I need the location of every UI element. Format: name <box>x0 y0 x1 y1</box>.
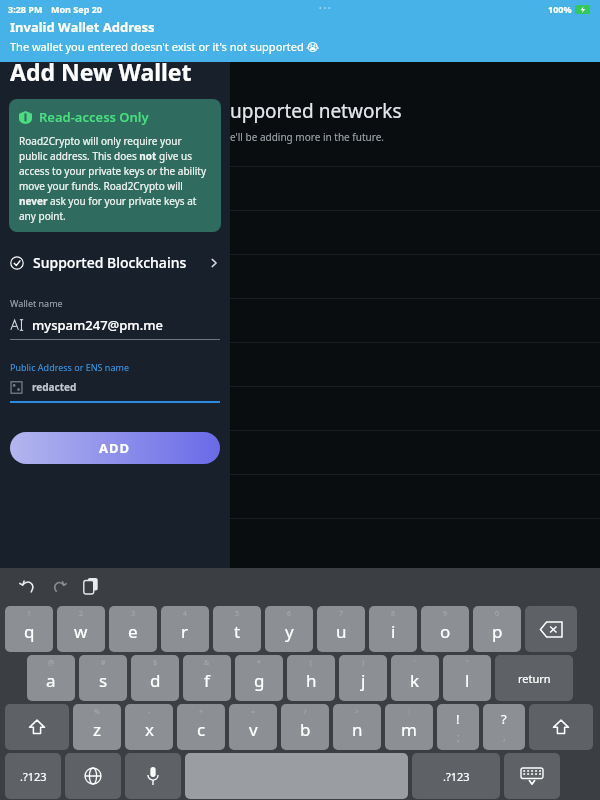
staticText: ; <box>457 729 460 744</box>
button[interactable]: 3 <box>109 606 157 652</box>
staticText: h <box>306 669 317 692</box>
button[interactable]: + <box>177 704 225 750</box>
staticText: z <box>93 718 101 741</box>
staticText: f <box>204 669 210 692</box>
button[interactable] <box>5 704 69 750</box>
staticText: 5 <box>235 609 240 619</box>
button[interactable]: Undo <box>14 573 40 599</box>
staticText: * <box>257 658 261 668</box>
staticText: + <box>199 707 204 717</box>
staticText: i <box>391 620 396 643</box>
staticText: u <box>336 620 347 643</box>
button[interactable] <box>529 704 593 750</box>
button[interactable]: > <box>333 704 381 750</box>
button[interactable] <box>525 606 577 652</box>
button[interactable]: return <box>495 655 573 701</box>
button[interactable]: ADD <box>10 432 220 464</box>
staticText: 1 <box>27 609 32 619</box>
staticText: & <box>204 658 210 668</box>
button[interactable]: # <box>79 655 127 701</box>
staticText: : <box>408 707 410 717</box>
staticText: / <box>304 707 307 717</box>
staticText: ) <box>362 658 365 668</box>
button[interactable]: 1 <box>5 606 53 652</box>
staticText: l <box>465 669 470 692</box>
staticText: .?123 <box>20 769 47 784</box>
button[interactable]: $ <box>131 655 179 701</box>
staticText: .?123 <box>443 769 470 784</box>
button[interactable]: ' <box>391 655 439 701</box>
staticText: @ <box>48 658 55 668</box>
button[interactable] <box>185 753 408 799</box>
staticText: m <box>401 718 417 741</box>
button[interactable]: : <box>385 704 433 750</box>
staticText: ? <box>501 710 507 728</box>
staticText: r <box>181 620 189 643</box>
button[interactable]: Supported Blockchains <box>0 246 230 279</box>
staticText: > <box>355 707 360 717</box>
staticText: c <box>197 718 206 741</box>
button[interactable]: ! <box>437 704 479 750</box>
staticText: Add New Wallet <box>10 56 192 87</box>
staticText: 9 <box>443 609 448 619</box>
staticText: upported networks <box>230 98 402 124</box>
staticText: x <box>145 718 154 741</box>
button[interactable]: @ <box>27 655 75 701</box>
button[interactable]: ( <box>287 655 335 701</box>
button[interactable]: ) <box>339 655 387 701</box>
button[interactable]: Redo <box>46 573 72 599</box>
staticText: " <box>466 658 469 668</box>
button[interactable] <box>65 753 121 799</box>
staticText: 8 <box>391 609 396 619</box>
staticText: d <box>150 669 161 692</box>
staticText: 4 <box>183 609 188 619</box>
staticText: ADD <box>99 439 131 457</box>
staticText: myspam247@pm.me <box>32 316 163 334</box>
button[interactable]: & <box>183 655 231 701</box>
button[interactable]: * <box>235 655 283 701</box>
staticText: 100% <box>548 3 572 15</box>
staticText: ( <box>310 658 313 668</box>
button[interactable]: 6 <box>265 606 313 652</box>
button[interactable]: .?123 <box>412 753 500 799</box>
staticText: , <box>503 729 506 744</box>
staticText: redacted <box>32 380 77 394</box>
staticText: k <box>410 669 420 692</box>
button[interactable]: .?123 <box>5 753 61 799</box>
staticText: o <box>440 620 451 643</box>
button[interactable]: 5 <box>213 606 261 652</box>
staticText: j <box>361 669 366 692</box>
staticText: 6 <box>287 609 292 619</box>
staticText: 0 <box>495 609 500 619</box>
button[interactable]: 4 <box>161 606 209 652</box>
staticText: b <box>300 718 311 741</box>
staticText: The wallet you entered doesn't exist or … <box>10 39 320 54</box>
button[interactable]: 2 <box>57 606 105 652</box>
staticText: a <box>46 669 56 692</box>
staticText: p <box>492 620 503 643</box>
button[interactable]: 7 <box>317 606 365 652</box>
staticText: w <box>74 620 88 643</box>
staticText: # <box>101 658 106 668</box>
button[interactable]: = <box>229 704 277 750</box>
button[interactable]: / <box>281 704 329 750</box>
staticText: Invalid Wallet Address <box>10 18 155 36</box>
button[interactable]: - <box>125 704 173 750</box>
staticText: Wallet name <box>10 297 63 309</box>
staticText: • • • <box>319 4 331 14</box>
staticText: Supported Blockchains <box>33 253 187 272</box>
staticText: Read-access Only <box>39 108 149 126</box>
staticText: e'll be adding more in the future. <box>230 130 384 144</box>
button[interactable] <box>125 753 181 799</box>
button[interactable]: % <box>73 704 121 750</box>
staticText: % <box>94 707 100 717</box>
button[interactable]: " <box>443 655 491 701</box>
button[interactable]: Paste <box>78 573 104 599</box>
button[interactable]: 9 <box>421 606 469 652</box>
button[interactable]: ? <box>483 704 525 750</box>
button[interactable]: 0 <box>473 606 521 652</box>
button[interactable]: 8 <box>369 606 417 652</box>
staticText: t <box>234 620 241 643</box>
button[interactable] <box>504 753 560 799</box>
staticText: $ <box>153 658 158 668</box>
